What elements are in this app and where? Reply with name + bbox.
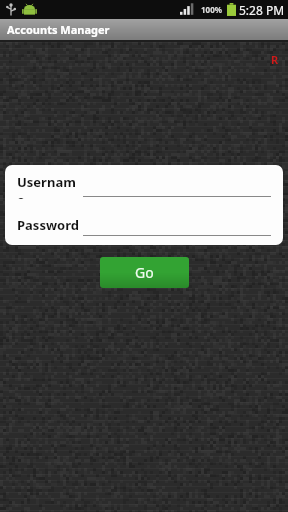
staticText: Password [17, 216, 83, 234]
button[interactable] [83, 175, 271, 197]
staticText: Accounts Manager [7, 22, 110, 37]
staticText: R [271, 52, 279, 67]
button[interactable] [83, 214, 271, 236]
staticText: 100% [201, 4, 222, 15]
staticText: 5:28 PM [239, 2, 285, 18]
staticText: Go [135, 263, 154, 282]
staticText: Username [17, 173, 83, 199]
button[interactable]: Go [100, 257, 189, 288]
